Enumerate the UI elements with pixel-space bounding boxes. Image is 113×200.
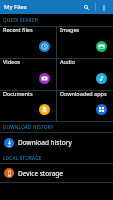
staticText: Videos	[3, 58, 21, 65]
button[interactable]: Videos	[0, 59, 56, 90]
staticText: DOWNLOAD HISTORY	[3, 124, 54, 130]
button[interactable]: Audio	[57, 59, 113, 90]
staticText: Documents	[3, 90, 33, 97]
staticText: Download history	[18, 138, 72, 147]
staticText: LOCAL STORAGE	[3, 155, 42, 161]
button[interactable]: Device storage	[0, 164, 113, 182]
button[interactable]: Search	[79, 0, 93, 14]
staticText: Recent files	[3, 26, 33, 33]
staticText: Images	[60, 26, 80, 33]
button[interactable]: More options	[97, 1, 110, 14]
button[interactable]: Downloaded apps	[57, 91, 113, 121]
button[interactable]: Recent files	[0, 27, 56, 58]
staticText: Audio	[60, 58, 76, 65]
staticText: My Files	[4, 3, 27, 11]
button[interactable]: Documents	[0, 91, 56, 121]
staticText: QUICK SEARCH	[3, 17, 39, 23]
staticText: Device storage	[18, 169, 63, 178]
button[interactable]: Images	[57, 27, 113, 58]
staticText: Downloaded apps	[60, 90, 107, 97]
button[interactable]: Download history	[0, 133, 113, 152]
